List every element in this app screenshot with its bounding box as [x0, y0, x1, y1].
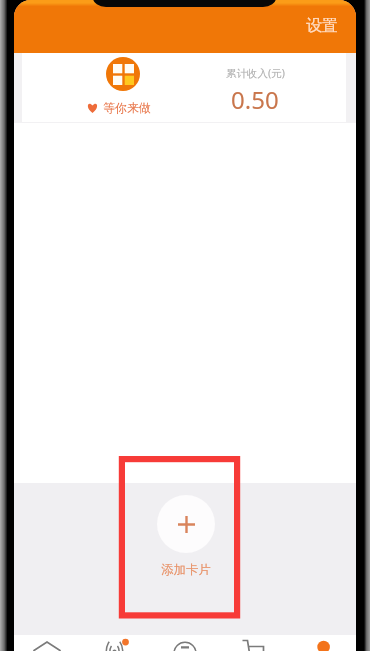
button[interactable]: Account — [106, 57, 140, 91]
button[interactable]: Cart — [236, 635, 268, 651]
button[interactable]: Messages — [169, 635, 201, 651]
button[interactable]: 添加卡片 — [157, 495, 215, 583]
button[interactable]: Home — [31, 635, 63, 651]
staticText: 添加卡片 — [161, 562, 211, 578]
button[interactable]: 等你来做 — [87, 100, 151, 115]
button[interactable]: 设置 — [300, 13, 344, 39]
staticText: 0.50 — [231, 83, 279, 116]
staticText: 等你来做 — [103, 100, 151, 115]
staticText: 累计收入(元) — [226, 66, 285, 80]
staticText: 设置 — [306, 16, 338, 36]
button[interactable]: Profile — [308, 635, 340, 651]
button[interactable]: Discover — [99, 635, 131, 651]
button[interactable]: 累计收入(元) — [196, 58, 314, 124]
